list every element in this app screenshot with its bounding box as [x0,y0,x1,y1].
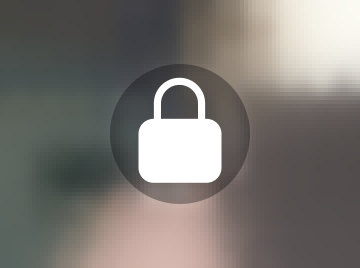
button[interactable]: Locked [110,64,250,204]
